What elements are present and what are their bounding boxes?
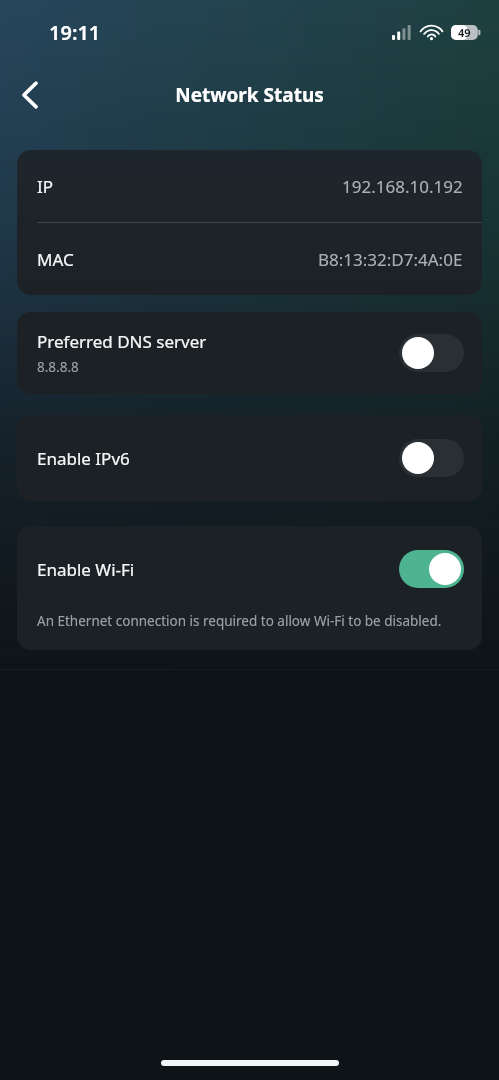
staticText: Network Status [175, 82, 324, 108]
staticText: 19:11 [49, 19, 101, 46]
button[interactable]: Back [4, 69, 56, 121]
staticText: IP [37, 175, 54, 198]
staticText: 8.8.8.8 [37, 358, 79, 376]
button[interactable]: Enable Wi-Fi [399, 550, 464, 588]
staticText: 192.168.10.192 [342, 175, 463, 198]
button[interactable]: Enable Wi-Fi [17, 526, 482, 650]
staticText: Enable Wi-Fi [37, 558, 135, 581]
button[interactable]: Preferred DNS server [17, 312, 482, 394]
button[interactable]: Preferred DNS server [399, 334, 464, 372]
staticText: Enable IPv6 [37, 447, 130, 470]
button[interactable]: MAC [17, 223, 482, 295]
staticText: An Ethernet connection is required to al… [37, 612, 442, 630]
staticText: B8:13:32:D7:4A:0E [318, 248, 463, 271]
staticText: 49 [458, 25, 471, 40]
staticText: Preferred DNS server [37, 330, 207, 353]
button[interactable]: IP [17, 150, 482, 222]
button[interactable]: Enable IPv6 [17, 415, 482, 501]
button[interactable]: Enable IPv6 [399, 439, 464, 477]
staticText: MAC [37, 248, 74, 271]
